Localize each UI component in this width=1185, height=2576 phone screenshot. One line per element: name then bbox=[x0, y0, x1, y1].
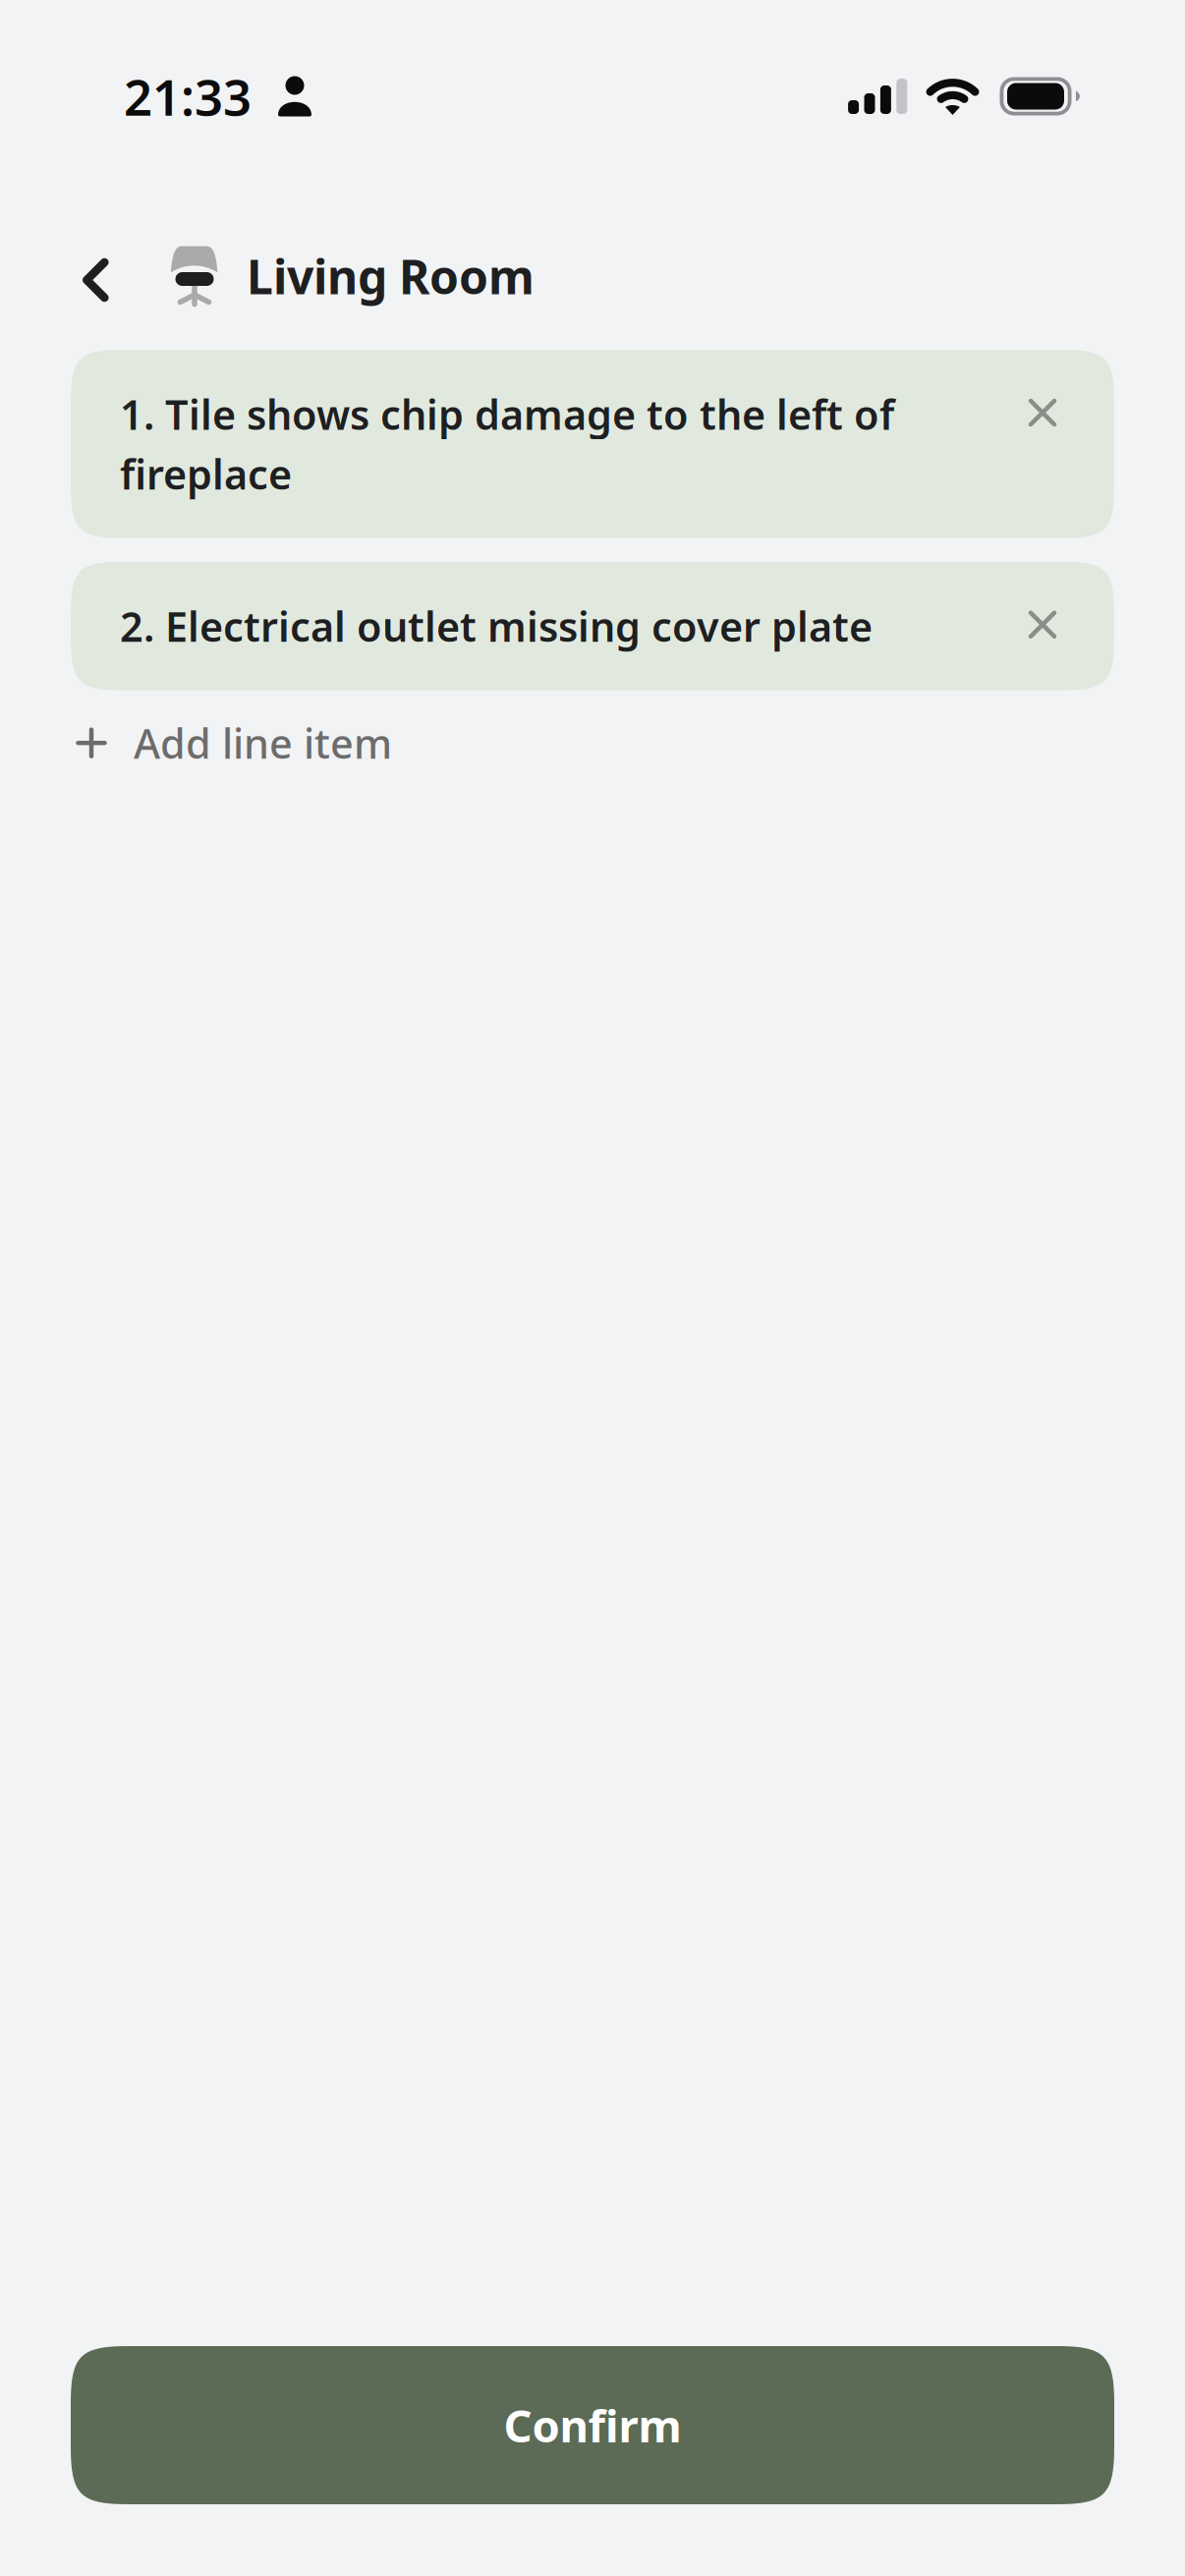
staticText: Add line item bbox=[134, 716, 392, 770]
staticText: Confirm bbox=[504, 2396, 681, 2455]
staticText: 1. Tile shows chip damage to the left of… bbox=[120, 387, 894, 501]
button[interactable]: Remove line item bbox=[1014, 384, 1071, 441]
button[interactable]: Remove line item bbox=[1014, 596, 1071, 653]
staticText: 2. Electrical outlet missing cover plate bbox=[120, 599, 873, 653]
staticText: 21:33 bbox=[124, 63, 252, 129]
button[interactable]: Add line item bbox=[0, 696, 1185, 790]
button[interactable]: Back bbox=[71, 246, 140, 307]
button[interactable]: Confirm bbox=[71, 2346, 1114, 2504]
staticText: Living Room bbox=[247, 245, 535, 307]
